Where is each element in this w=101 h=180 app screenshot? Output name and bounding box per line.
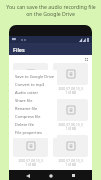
button[interactable]: Convert to mp3 (11, 80, 57, 88)
staticText: 1.05 MB (66, 163, 76, 166)
staticText: Audio cutter (15, 90, 39, 95)
button[interactable]: Audio cutter (11, 88, 57, 96)
staticText: Delete file (15, 122, 34, 127)
staticText: 2020_07_08_10_3 (18, 159, 43, 163)
staticText: on the Google Drive (26, 10, 75, 17)
staticText: 1.05 MB (66, 127, 76, 131)
button[interactable]: Home (46, 171, 55, 180)
staticText: You can save the audio recording file (6, 3, 96, 10)
staticText: 2020_07_08_10_3 (58, 87, 83, 91)
button[interactable]: 2020_07_08_10_3 (13, 135, 48, 166)
staticText: Compress file (15, 114, 41, 119)
button[interactable]: 2020_07_08_10_3 (13, 99, 48, 131)
button[interactable]: Share file (11, 96, 57, 104)
staticText: Share file (15, 98, 33, 103)
button[interactable]: 2020_07_08_10_3 (53, 135, 88, 166)
button[interactable]: Grid view (84, 57, 88, 61)
staticText: File properties (15, 130, 42, 135)
staticText: Save to Google Drive (15, 74, 55, 79)
button[interactable]: Delete file (11, 120, 57, 128)
staticText: 2020_07_08_10_3 (58, 123, 83, 127)
button[interactable]: Compress file (11, 112, 57, 120)
staticText: Rename file (15, 106, 38, 111)
staticText: 1.05 MB (26, 163, 36, 166)
staticText: 1.05 MB (26, 91, 36, 95)
staticText: 2020_07_08_10_3 (58, 159, 83, 163)
staticText: 1.05 MB (66, 91, 76, 95)
staticText: Files (13, 46, 25, 53)
button[interactable]: File properties (11, 128, 57, 136)
button[interactable]: 2020_07_08_10_3 (53, 99, 88, 131)
button[interactable]: 2020_07_08_10_3 (53, 63, 88, 95)
staticText: Convert to mp3 (15, 82, 45, 87)
button[interactable]: Rename file (11, 104, 57, 112)
button[interactable]: 2020_07_08_10_3 (13, 63, 48, 95)
button[interactable]: Save to Google Drive (11, 72, 57, 80)
staticText: 2020_07_08_10_3 (18, 123, 43, 127)
button[interactable]: Recents (69, 171, 78, 180)
button[interactable]: Back (23, 171, 32, 180)
